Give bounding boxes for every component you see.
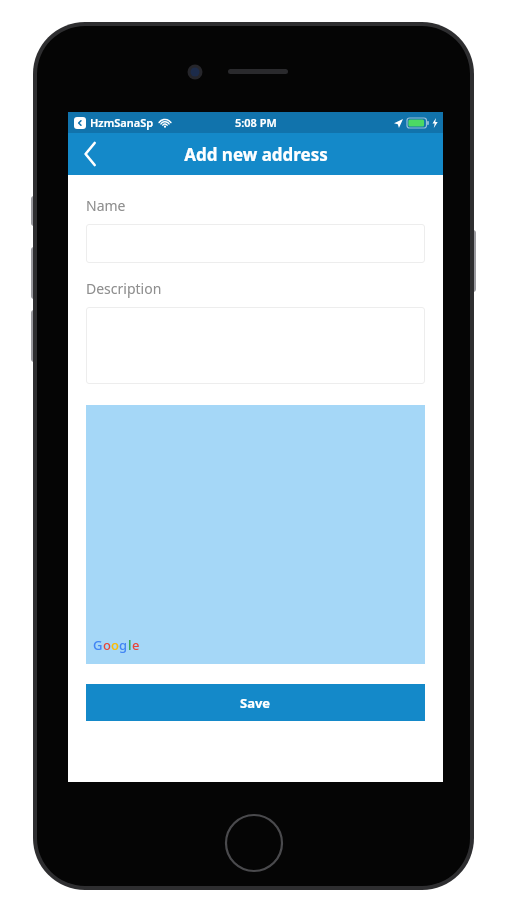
staticText: G	[93, 636, 103, 654]
staticText: 5:08 PM	[235, 115, 277, 130]
button[interactable]: Save	[86, 684, 425, 721]
staticText: o	[103, 636, 111, 654]
staticText: Save	[240, 694, 271, 712]
staticText: o	[111, 636, 119, 654]
button[interactable]: Map	[86, 405, 425, 664]
staticText: HzmSanaSp	[90, 115, 154, 130]
staticText: l	[128, 636, 132, 654]
staticText: e	[132, 636, 140, 654]
staticText: Description	[86, 279, 162, 298]
staticText: g	[119, 636, 128, 654]
button[interactable]	[86, 307, 425, 384]
button[interactable]	[86, 224, 425, 263]
staticText: Name	[86, 196, 126, 215]
button[interactable]: Back	[68, 133, 112, 175]
staticText: Add new address	[184, 143, 328, 166]
